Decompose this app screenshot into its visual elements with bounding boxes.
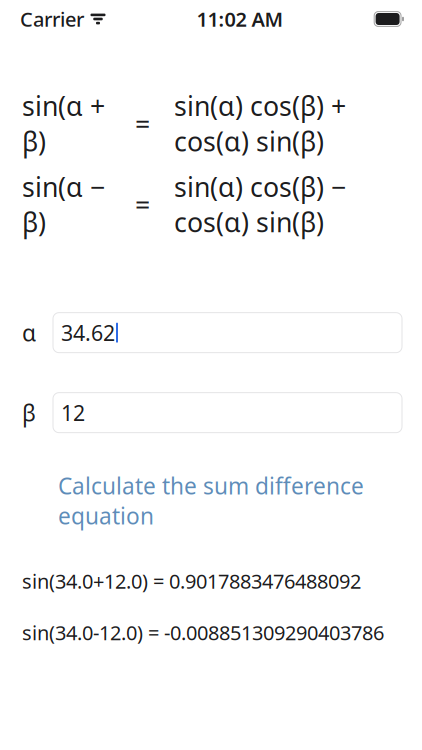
button[interactable]: 34.62 [53,313,402,353]
staticText: β [22,398,36,428]
staticText: = [135,186,150,222]
staticText: Carrier [20,6,84,32]
staticText: Calculate the sum difference equation [58,471,364,531]
staticText: sin(34.0+12.0) = 0.9017883476488092 [22,568,361,594]
staticText: sin(α) cos(β) + cos(α) sin(β) [174,88,346,159]
staticText: 34.62 [61,318,115,347]
staticText: 11:02 AM [197,6,284,32]
staticText: sin(34.0-12.0) = -0.008851309290403786 [22,619,384,646]
staticText: = [135,106,150,141]
staticText: 12 [61,398,85,427]
button[interactable]: Calculate the sum difference equation [0,486,422,516]
staticText: α [22,318,36,348]
staticText: sin(α − β) [22,169,105,240]
button[interactable]: 12 [53,393,402,433]
staticText: sin(α + β) [22,88,105,159]
staticText: sin(α) cos(β) − cos(α) sin(β) [174,169,346,240]
